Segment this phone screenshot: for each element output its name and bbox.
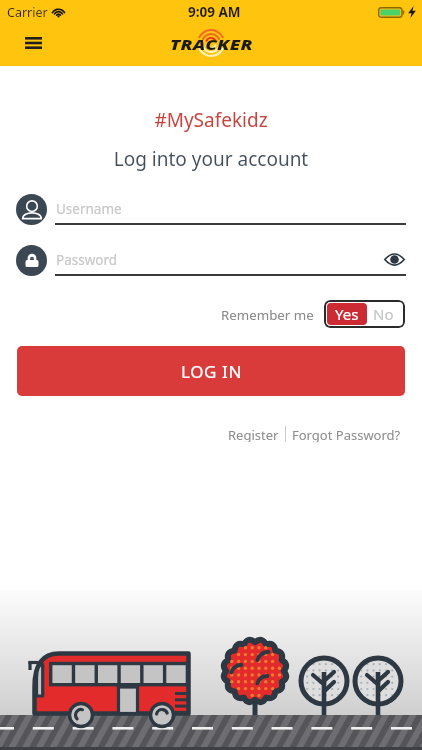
staticText: TRACKER — [170, 34, 253, 54]
staticText: Carrier — [7, 4, 48, 21]
button[interactable]: Menu — [18, 29, 48, 59]
staticText: Log into your account — [0, 146, 422, 172]
staticText: LOG IN — [181, 360, 242, 383]
button[interactable]: Register — [222, 422, 285, 446]
button[interactable]: LOG IN — [17, 346, 405, 396]
staticText: Forgot Password? — [292, 426, 401, 442]
staticText: #MySafekidz — [0, 107, 422, 133]
staticText: Remember me — [221, 306, 314, 324]
staticText: Username — [56, 200, 122, 218]
staticText: 9:09 AM — [188, 3, 241, 21]
button[interactable]: Show password — [382, 247, 406, 271]
staticText: Register — [228, 426, 279, 442]
staticText: Yes — [335, 304, 359, 324]
button[interactable]: Yes — [324, 300, 405, 328]
staticText: Password — [56, 251, 118, 269]
button[interactable]: Forgot Password? — [286, 422, 407, 446]
staticText: No — [373, 304, 394, 324]
